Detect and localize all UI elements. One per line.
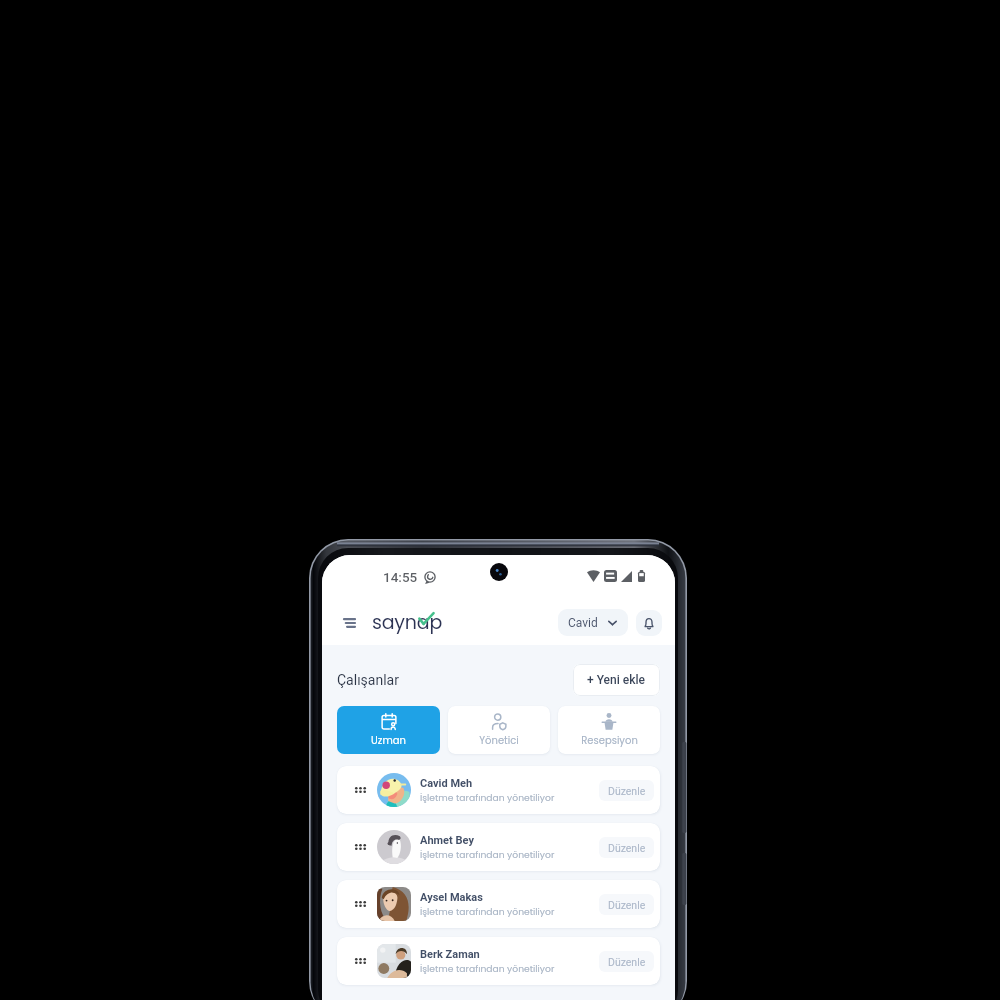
button[interactable]: Resepsiyon xyxy=(558,706,660,754)
button[interactable]: Berk Zaman xyxy=(337,937,660,985)
staticText: saynap xyxy=(372,609,443,636)
staticText: Düzenle xyxy=(608,899,646,911)
button[interactable]: Aysel Makas xyxy=(337,880,660,928)
staticText: 14:55 xyxy=(383,569,418,585)
button[interactable]: Menu xyxy=(338,612,360,634)
button[interactable]: Ahmet Bey xyxy=(337,823,660,871)
staticText: Ahmet Bey xyxy=(420,834,474,847)
staticText: İşletme tarafından yönetiliyor xyxy=(420,791,555,804)
staticText: İşletme tarafından yönetiliyor xyxy=(420,905,555,918)
staticText: Yönetici xyxy=(479,733,519,747)
staticText: Uzman xyxy=(371,733,406,747)
staticText: Çalışanlar xyxy=(337,672,399,688)
staticText: Düzenle xyxy=(608,785,646,797)
staticText: Resepsiyon xyxy=(581,733,638,747)
button[interactable]: Uzman xyxy=(337,706,440,754)
button[interactable]: Yönetici xyxy=(448,706,550,754)
staticText: Berk Zaman xyxy=(420,948,480,961)
button[interactable]: + Yeni ekle xyxy=(573,664,660,696)
button[interactable]: Düzenle xyxy=(599,780,654,801)
button[interactable]: Düzenle xyxy=(599,837,654,858)
staticText: Aysel Makas xyxy=(420,891,483,904)
staticText: İşletme tarafından yönetiliyor xyxy=(420,848,555,861)
staticText: Cavid xyxy=(568,616,598,630)
button[interactable]: Notifications xyxy=(636,610,662,636)
staticText: Cavid Meh xyxy=(420,777,473,790)
button[interactable]: Düzenle xyxy=(599,951,654,972)
button[interactable]: Cavid xyxy=(558,609,628,636)
staticText: Düzenle xyxy=(608,956,646,968)
button[interactable]: Düzenle xyxy=(599,894,654,915)
staticText: + Yeni ekle xyxy=(587,673,645,687)
staticText: İşletme tarafından yönetiliyor xyxy=(420,962,555,975)
button[interactable]: Cavid Meh xyxy=(337,766,660,814)
staticText: Düzenle xyxy=(608,842,646,854)
